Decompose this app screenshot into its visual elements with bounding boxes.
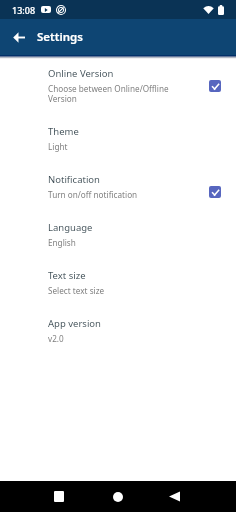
button[interactable]: Online Version bbox=[209, 80, 221, 92]
button[interactable]: Online Version bbox=[0, 67, 236, 125]
staticText: Online Version bbox=[48, 67, 114, 80]
button[interactable]: Notification bbox=[0, 173, 236, 221]
staticText: Select text size bbox=[48, 285, 105, 296]
staticText: App version bbox=[48, 317, 101, 330]
staticText: Turn on/off notification bbox=[48, 189, 138, 200]
staticText: Settings bbox=[37, 29, 83, 45]
button[interactable]: Home bbox=[99, 481, 136, 512]
button[interactable]: Back bbox=[156, 481, 193, 512]
staticText: English bbox=[48, 237, 76, 248]
button[interactable]: App version bbox=[0, 317, 236, 365]
staticText: 13:08 bbox=[12, 4, 36, 16]
button[interactable]: Recents bbox=[40, 481, 77, 512]
staticText: Notification bbox=[48, 173, 100, 186]
staticText: Text size bbox=[48, 269, 86, 282]
button[interactable]: Theme bbox=[0, 125, 236, 173]
staticText: Choose between Online/Offline Version bbox=[48, 83, 170, 104]
button[interactable]: Language bbox=[0, 221, 236, 269]
button[interactable]: Back bbox=[7, 25, 31, 49]
staticText: Light bbox=[48, 141, 68, 152]
button[interactable]: Notification bbox=[209, 186, 221, 198]
staticText: v2.0 bbox=[48, 333, 64, 344]
staticText: Theme bbox=[48, 125, 79, 138]
button[interactable]: Text size bbox=[0, 269, 236, 317]
staticText: Language bbox=[48, 221, 93, 234]
